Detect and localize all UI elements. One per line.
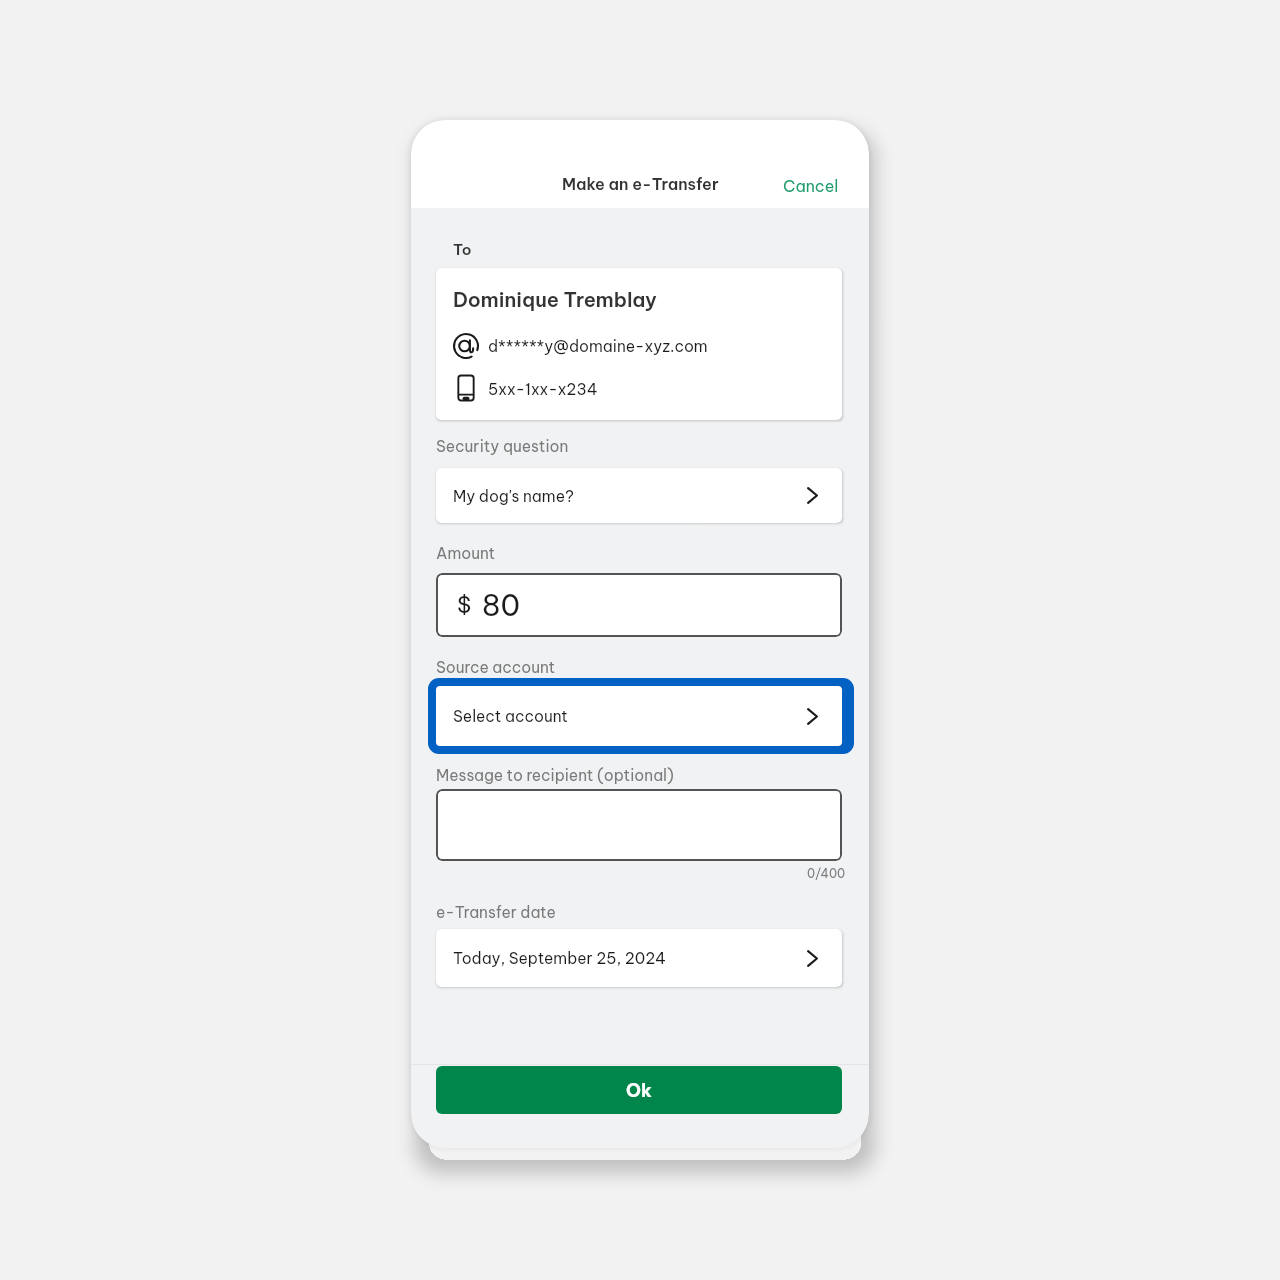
staticText: Source account bbox=[436, 657, 556, 677]
staticText: Make an e-Transfer bbox=[562, 174, 719, 194]
staticText: My dog's name? bbox=[453, 486, 574, 506]
button[interactable]: Ok bbox=[436, 1066, 842, 1114]
button[interactable]: Cancel bbox=[775, 170, 847, 202]
staticText: Amount bbox=[436, 543, 496, 563]
staticText: Ok bbox=[626, 1079, 652, 1102]
staticText: 5xx-1xx-x234 bbox=[488, 379, 598, 399]
button[interactable]: Message to recipient bbox=[436, 789, 842, 861]
button[interactable]: Recipient Dominique Tremblay bbox=[436, 268, 842, 420]
staticText: Message to recipient (optional) bbox=[436, 765, 674, 785]
button[interactable]: Amount bbox=[436, 573, 842, 637]
staticText: d******y@domaine-xyz.com bbox=[488, 336, 708, 356]
staticText: Security question bbox=[436, 436, 569, 456]
staticText: 0/400 bbox=[807, 866, 846, 881]
staticText: Cancel bbox=[783, 176, 839, 196]
staticText: $ bbox=[457, 591, 472, 619]
button[interactable]: Choose e-Transfer date bbox=[436, 929, 842, 987]
staticText: Dominique Tremblay bbox=[453, 287, 657, 312]
staticText: 80 bbox=[482, 587, 520, 624]
staticText: To bbox=[453, 240, 472, 259]
button[interactable]: Select source account bbox=[428, 678, 854, 754]
button[interactable]: Choose security question bbox=[436, 468, 842, 523]
staticText: Select account bbox=[453, 706, 568, 726]
staticText: e-Transfer date bbox=[436, 902, 556, 922]
staticText: Today, September 25, 2024 bbox=[453, 948, 666, 968]
